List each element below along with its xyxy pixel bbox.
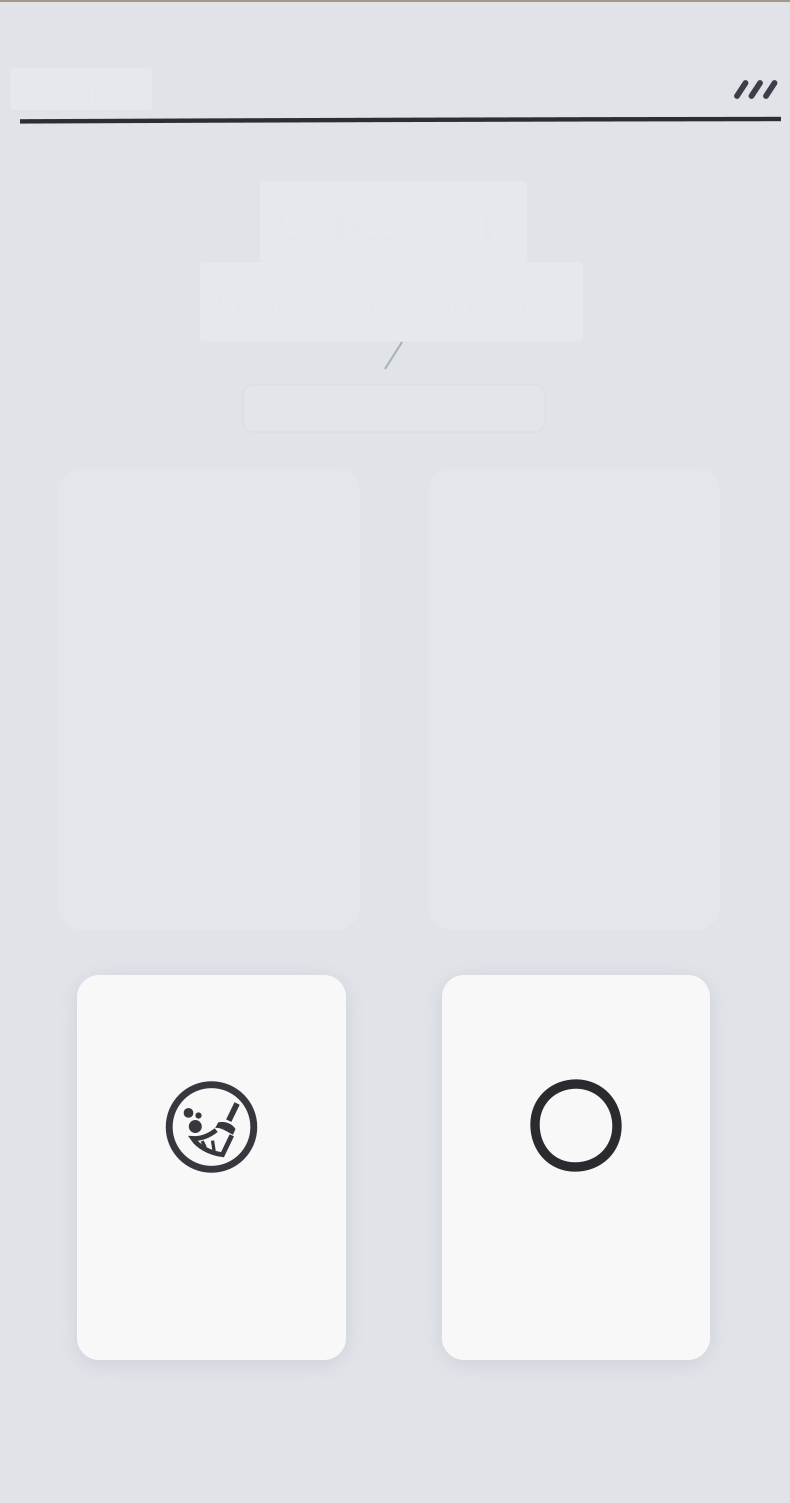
- button[interactable]: Circle: [442, 975, 710, 1360]
- button[interactable]: More options: [732, 72, 780, 106]
- button[interactable]: Broom: [77, 975, 346, 1360]
